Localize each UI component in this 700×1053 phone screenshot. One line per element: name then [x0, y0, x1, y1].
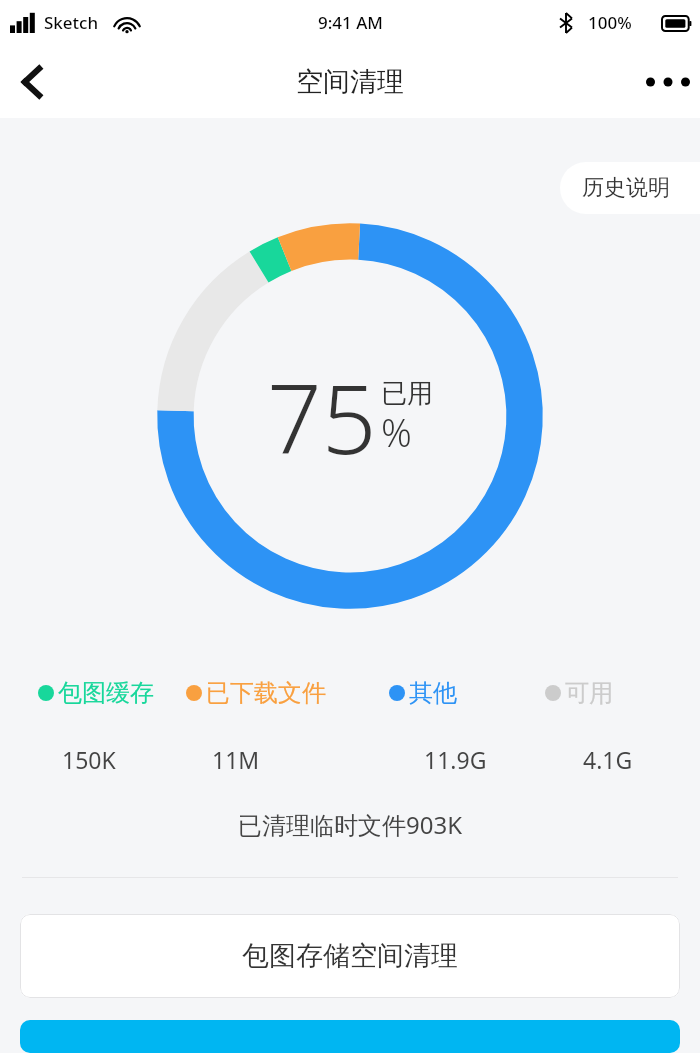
- button[interactable]: 包图存储空间清理: [20, 914, 680, 998]
- staticText: %: [381, 406, 412, 458]
- staticText: 9:41 AM: [318, 11, 383, 34]
- button[interactable]: 包图缓存: [38, 678, 154, 708]
- staticText: 11M: [212, 744, 260, 775]
- staticText: 75: [267, 351, 377, 482]
- button[interactable]: 可用: [545, 678, 613, 708]
- staticText: 11.9G: [424, 744, 487, 775]
- button[interactable]: More options: [624, 50, 700, 114]
- staticText: 已下载文件: [206, 678, 326, 708]
- staticText: 包图存储空间清理: [242, 939, 458, 973]
- staticText: 空间清理: [296, 65, 404, 99]
- staticText: 150K: [62, 744, 116, 775]
- button[interactable]: 其他: [389, 678, 457, 708]
- staticText: 已清理临时文件903K: [0, 808, 700, 841]
- button[interactable]: [20, 1020, 680, 1053]
- button[interactable]: Back: [0, 50, 64, 114]
- staticText: 可用: [565, 678, 613, 708]
- staticText: 历史说明: [582, 174, 670, 202]
- staticText: 包图缓存: [58, 678, 154, 708]
- button[interactable]: 已下载文件: [186, 678, 326, 708]
- button[interactable]: 历史说明: [560, 162, 700, 214]
- staticText: 4.1G: [583, 744, 633, 775]
- staticText: 100%: [588, 11, 632, 34]
- staticText: Sketch: [44, 11, 99, 34]
- staticText: 其他: [409, 678, 457, 708]
- staticText: 已用: [381, 377, 433, 410]
